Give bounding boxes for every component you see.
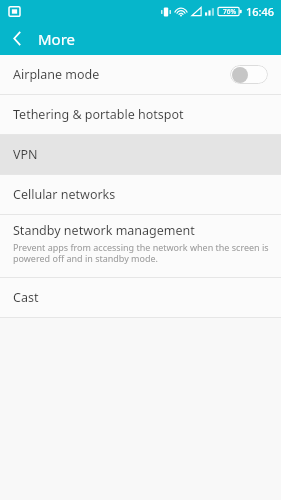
button[interactable]: Cellular networks — [0, 175, 281, 214]
staticText: Standby network management — [13, 222, 195, 239]
staticText: Cast — [13, 289, 39, 306]
staticText: 76% — [223, 7, 236, 16]
staticText: Cellular networks — [13, 186, 116, 203]
staticText: 16:46 — [246, 4, 275, 19]
button[interactable]: Standby network management — [0, 215, 281, 277]
button[interactable]: VPN — [0, 135, 281, 174]
staticText: Prevent apps from accessing the network … — [13, 241, 271, 265]
staticText: Tethering & portable hotspot — [13, 106, 184, 123]
button[interactable]: Tethering & portable hotspot — [0, 95, 281, 134]
staticText: Airplane mode — [13, 66, 230, 83]
button[interactable]: Airplane mode — [0, 55, 281, 94]
button[interactable]: Back — [0, 22, 34, 55]
staticText: VPN — [13, 146, 38, 163]
button[interactable]: Cast — [0, 278, 281, 317]
staticText: More — [38, 29, 76, 49]
